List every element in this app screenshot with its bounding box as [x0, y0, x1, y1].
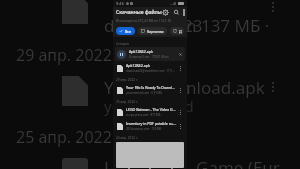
staticText: 24 апр. 2022 г.: [116, 136, 139, 140]
button[interactable]: Другие: [170, 27, 184, 35]
staticText: Все: [125, 29, 132, 34]
staticText: 200.dovaisov.com · 133 МБ ·: [126, 127, 163, 131]
staticText: Сегодня: [116, 42, 129, 46]
button[interactable]: Ещё: [177, 109, 183, 115]
staticText: yeconnected: [104, 96, 194, 116]
button[interactable]: Все: [116, 27, 135, 35]
staticText: Используется 410,43 МБ из 114,5 ГБ: [116, 19, 172, 23]
staticText: Картинки: [147, 29, 164, 34]
staticText: Apk12842.apk: [126, 63, 150, 68]
staticText: 25 апр. 2022 г.: [116, 100, 139, 104]
staticText: Осталось 5 сек. · 778,91 КБ из 135,88 МБ: [129, 55, 177, 59]
button[interactable]: Главный экран: [144, 168, 156, 169]
button[interactable]: Ещё: [177, 87, 183, 93]
button[interactable]: Картинки: [138, 27, 167, 35]
staticText: 29 апр. 2022 г.: [16, 44, 127, 66]
button[interactable]: Ещё: [177, 65, 183, 71]
staticText: download23@mobiform.com · 17,5 МБ ·: [126, 69, 177, 73]
staticText: 29 апр. 2022 г.: [116, 78, 139, 82]
staticText: m-cpa.press.com · 871 МБ ·: [126, 113, 162, 117]
button[interactable]: Отменить: [177, 51, 183, 57]
button[interactable]: Настройки: [162, 9, 169, 16]
button[interactable]: Поиск: [173, 9, 180, 16]
staticText: Your File Is: [104, 76, 191, 99]
button[interactable]: Обзор: [166, 168, 178, 169]
staticText: Скачанные файлы: [116, 9, 162, 16]
button[interactable]: Apk12842.apk: [115, 47, 185, 61]
staticText: yeconnected.com · 0,91 МБ ·: [126, 91, 164, 95]
staticText: 25 апр. 2022 г.: [16, 126, 127, 148]
button[interactable]: Apk12842.apk: [113, 61, 187, 75]
staticText: n 137 МБ ·: [186, 14, 270, 37]
staticText: Другие: [179, 29, 181, 34]
staticText: LEGO Bat: [104, 156, 180, 169]
staticText: ...ıll: [170, 1, 177, 6]
button[interactable]: Inventory in PDF potable ru.zip: [113, 119, 187, 133]
staticText: Inventory in PDF potable ru.zip: [126, 121, 177, 126]
staticText: download23: [104, 14, 203, 37]
button[interactable]: Ещё: [177, 123, 183, 129]
button[interactable]: LEGO Batman - The Video Game (Eur...: [113, 105, 187, 119]
staticText: 9:46: [116, 1, 124, 6]
staticText: Your File Is Ready To Download.apk: [126, 85, 177, 90]
button[interactable]: Your File Is Ready To Download.apk: [113, 83, 187, 97]
staticText: Game (Eur: [196, 156, 280, 169]
staticText: nload.apk: [186, 76, 265, 99]
staticText: LEGO Batman - The Video Game (Eur...: [126, 107, 177, 112]
button[interactable]: Назад: [123, 168, 135, 169]
staticText: Apk12842.apk: [129, 49, 153, 54]
